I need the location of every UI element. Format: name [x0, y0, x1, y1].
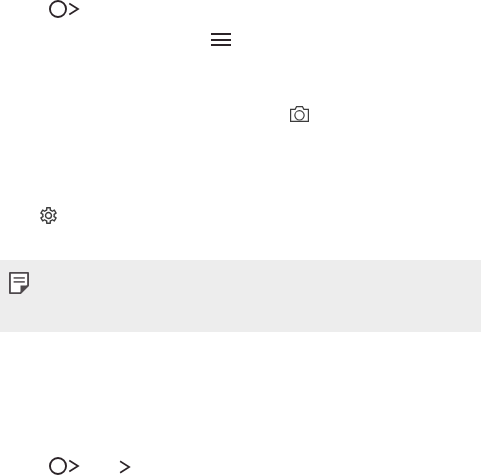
button[interactable]: Menu [211, 33, 231, 46]
button[interactable]: Play next [49, 457, 78, 475]
button[interactable]: Play next [49, 0, 78, 18]
button[interactable]: Note [0, 260, 481, 332]
button[interactable]: Camera [290, 106, 309, 122]
button[interactable]: More [120, 461, 130, 473]
button[interactable]: Note [9, 272, 29, 294]
button[interactable]: Settings [40, 207, 57, 224]
